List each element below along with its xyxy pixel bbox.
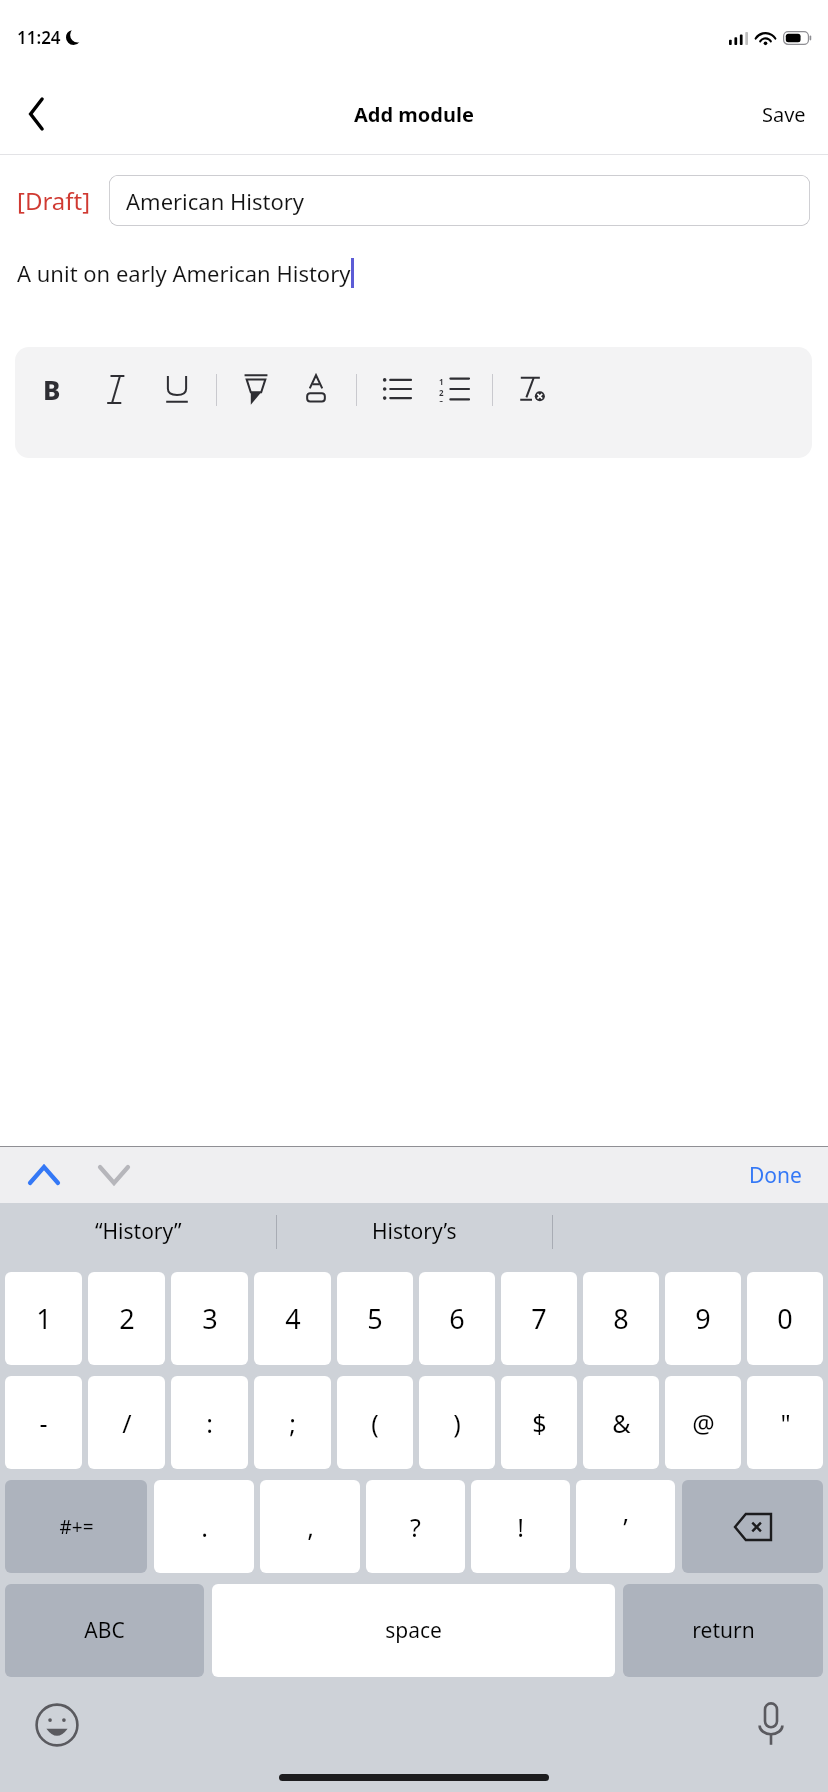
staticText: B — [43, 372, 61, 407]
button[interactable]: ? — [366, 1480, 465, 1573]
button[interactable]: Back — [10, 87, 64, 141]
staticText: Save — [762, 101, 806, 128]
button[interactable]: Highlight — [235, 368, 277, 410]
button[interactable]: ABC — [5, 1584, 204, 1677]
staticText: . — [201, 1510, 208, 1544]
button[interactable]: Save — [750, 91, 818, 138]
button[interactable]: ! — [471, 1480, 570, 1573]
staticText: - — [39, 1406, 48, 1440]
button[interactable]: ; — [254, 1376, 331, 1469]
button[interactable]: Clear formatting — [511, 368, 553, 410]
button[interactable]: “History” — [0, 1203, 276, 1260]
staticText: return — [692, 1616, 755, 1645]
staticText: : — [206, 1406, 213, 1440]
staticText: 0 — [777, 1300, 793, 1337]
staticText: History’s — [372, 1217, 457, 1246]
button[interactable]: , — [260, 1480, 360, 1573]
staticText: ’ — [623, 1510, 628, 1544]
staticText: space — [385, 1616, 442, 1645]
button[interactable]: Text color — [295, 368, 337, 410]
staticText: ABC — [84, 1616, 125, 1645]
staticText: American History — [126, 186, 305, 216]
button[interactable]: " — [747, 1376, 823, 1469]
staticText: [Draft] — [17, 184, 91, 217]
button[interactable]: 4 — [254, 1272, 331, 1365]
button[interactable]: / — [88, 1376, 165, 1469]
staticText: 8 — [613, 1300, 629, 1337]
button[interactable]: ) — [419, 1376, 495, 1469]
button[interactable]: & — [583, 1376, 659, 1469]
button[interactable]: 0 — [747, 1272, 823, 1365]
staticText: & — [612, 1406, 631, 1440]
staticText: #+= — [59, 1514, 94, 1540]
staticText: / — [122, 1406, 132, 1440]
button[interactable]: Italic — [95, 368, 137, 410]
button[interactable]: Done — [739, 1153, 812, 1198]
staticText: 6 — [449, 1300, 465, 1337]
button[interactable]: 1 — [5, 1272, 82, 1365]
staticText: 3 — [202, 1300, 218, 1337]
button[interactable]: 6 — [419, 1272, 495, 1365]
staticText: ( — [371, 1406, 379, 1440]
staticText: ? — [410, 1510, 421, 1544]
staticText: " — [780, 1406, 791, 1440]
button[interactable]: 7 — [501, 1272, 577, 1365]
staticText: ; — [289, 1406, 296, 1440]
button[interactable]: 3 — [171, 1272, 248, 1365]
staticText: 1 — [439, 376, 444, 387]
button[interactable]: 5 — [337, 1272, 413, 1365]
button[interactable]: Previous field — [18, 1149, 70, 1201]
button[interactable]: Numbered list — [433, 368, 475, 410]
button[interactable]: ’ — [576, 1480, 675, 1573]
staticText: $ — [532, 1406, 547, 1440]
staticText: Add module — [354, 101, 474, 128]
button[interactable]: #+= — [5, 1480, 147, 1573]
button[interactable]: return — [623, 1584, 823, 1677]
button[interactable]: 9 — [665, 1272, 741, 1365]
button[interactable]: Bulleted list — [376, 368, 418, 410]
staticText: 3 — [439, 398, 444, 402]
button[interactable]: Backspace — [682, 1480, 823, 1573]
button[interactable]: Emoji — [28, 1696, 86, 1754]
button[interactable]: space — [212, 1584, 615, 1677]
button[interactable]: 2 — [88, 1272, 165, 1365]
staticText: “History” — [95, 1217, 182, 1246]
staticText: ! — [517, 1510, 524, 1544]
button[interactable]: $ — [501, 1376, 577, 1469]
button[interactable]: - — [5, 1376, 82, 1469]
button[interactable]: History’s — [277, 1203, 552, 1260]
button[interactable]: : — [171, 1376, 248, 1469]
staticText: 2 — [439, 387, 444, 398]
button[interactable]: Bold — [31, 368, 73, 410]
staticText: 7 — [531, 1300, 547, 1337]
staticText: 4 — [285, 1300, 301, 1337]
staticText: 5 — [367, 1300, 383, 1337]
staticText: ) — [453, 1406, 461, 1440]
button[interactable]: 8 — [583, 1272, 659, 1365]
staticText: 11:24 — [17, 26, 61, 49]
staticText: 9 — [695, 1300, 711, 1337]
button[interactable]: @ — [665, 1376, 741, 1469]
button[interactable]: Underline — [156, 368, 198, 410]
staticText: Done — [749, 1161, 802, 1190]
staticText: 2 — [119, 1300, 135, 1337]
button[interactable]: Next field — [88, 1149, 140, 1201]
button[interactable]: . — [154, 1480, 254, 1573]
staticText: A unit on early American History — [17, 258, 351, 288]
staticText: 1 — [36, 1300, 52, 1337]
button[interactable]: Dictation — [742, 1696, 800, 1754]
button[interactable]: ( — [337, 1376, 413, 1469]
staticText: @ — [692, 1406, 715, 1440]
staticText: , — [307, 1510, 314, 1544]
button[interactable]: American History — [109, 175, 810, 226]
